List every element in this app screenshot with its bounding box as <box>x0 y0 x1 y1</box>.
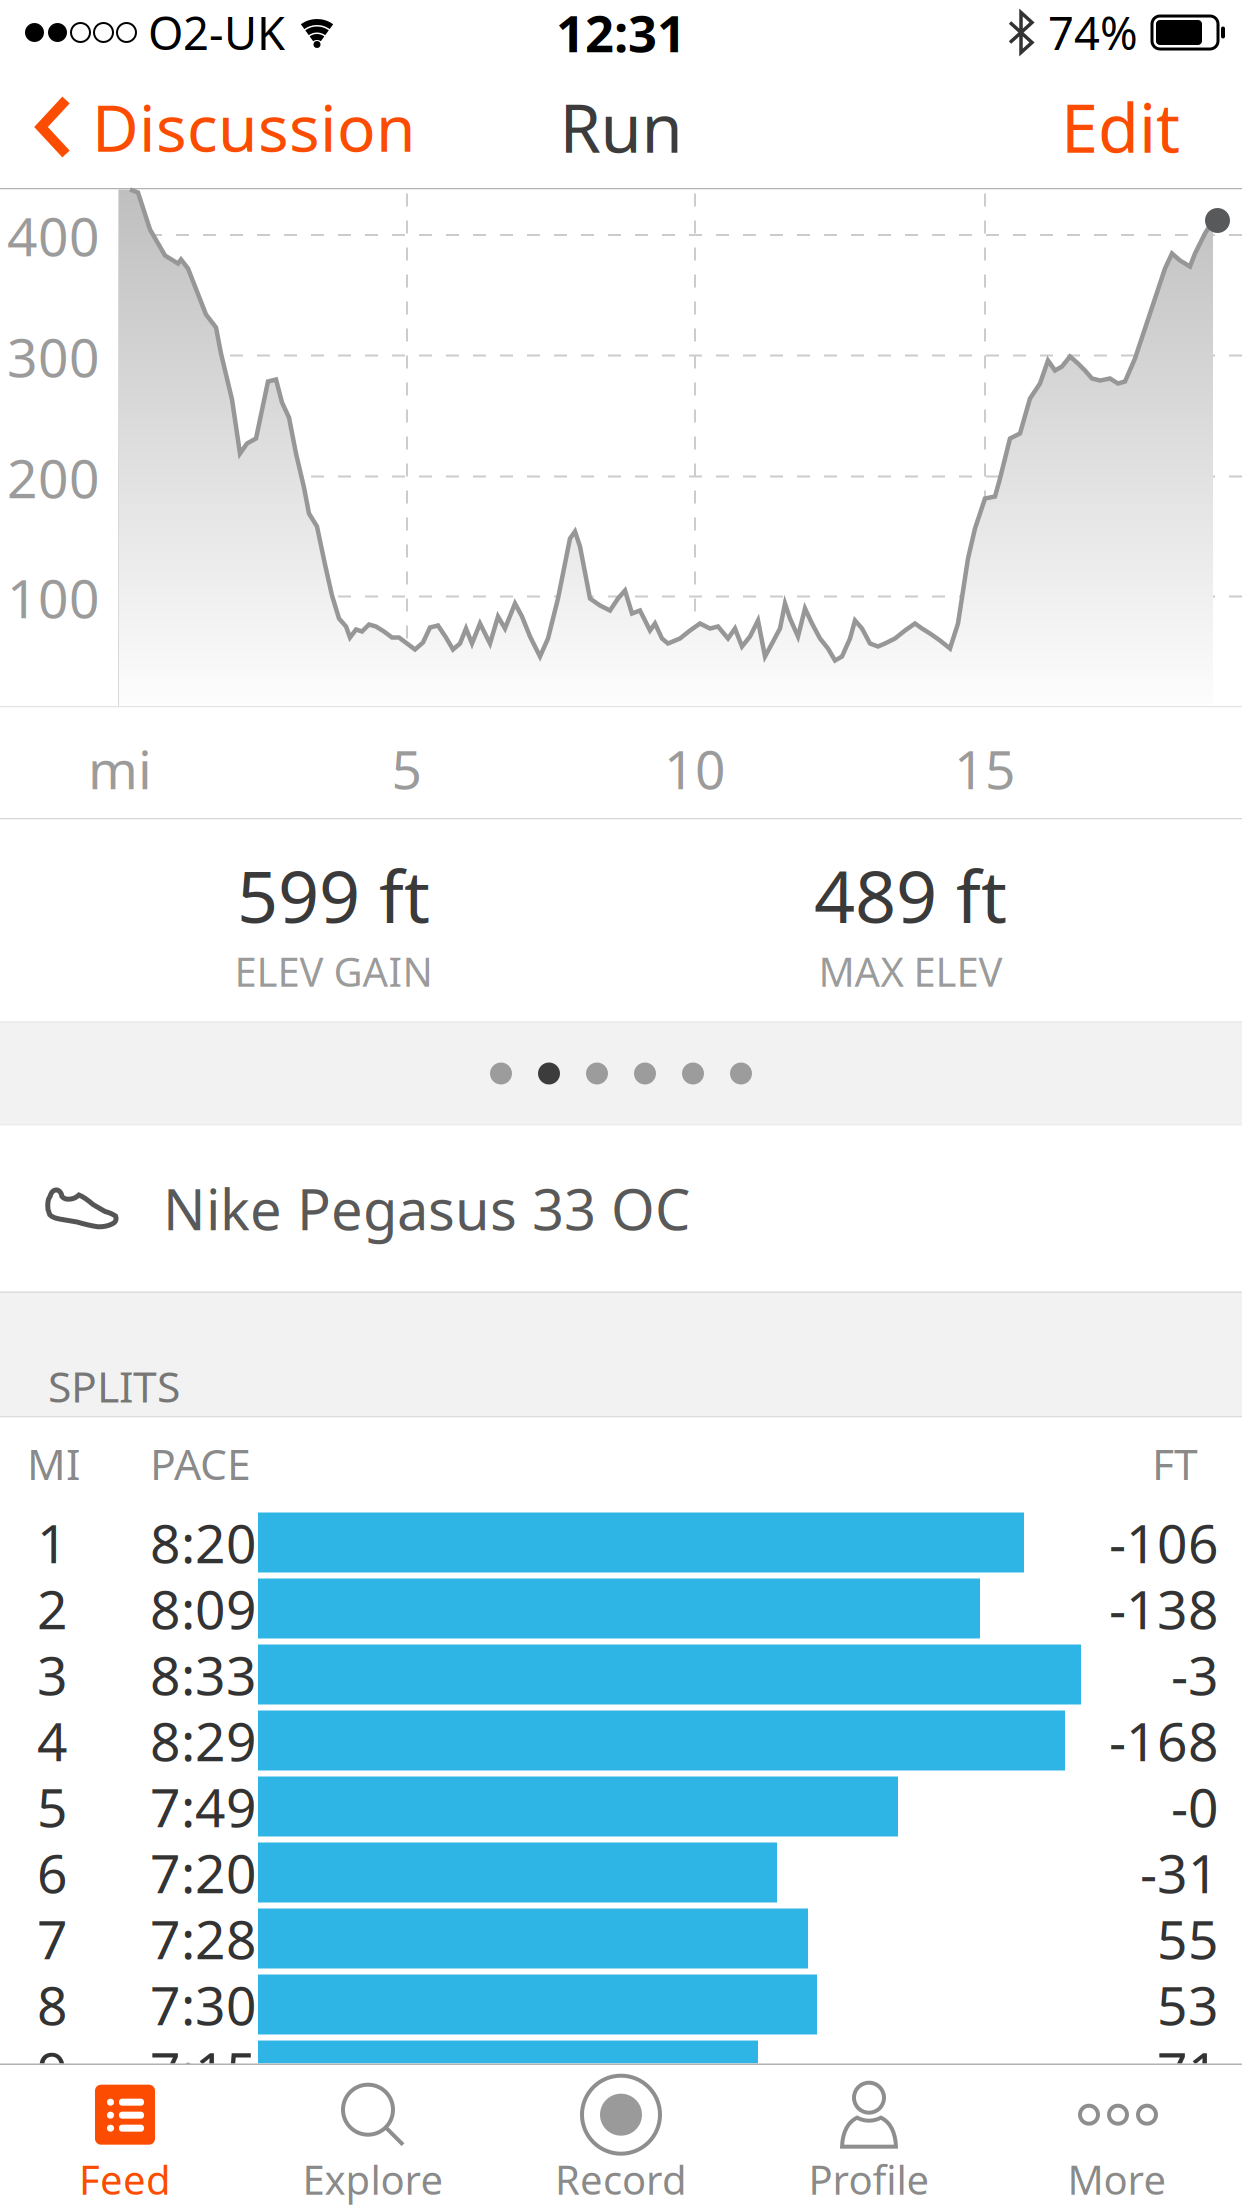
button[interactable]: Record <box>497 2065 745 2207</box>
staticText: 100 <box>7 562 100 633</box>
staticText: mi <box>88 733 152 804</box>
staticText: 5 <box>391 733 422 804</box>
staticText: Explore <box>302 2153 443 2206</box>
button[interactable]: Profile <box>745 2065 993 2207</box>
staticText: 200 <box>7 442 100 513</box>
staticText: 74% <box>1048 2 1138 63</box>
staticText: 599 ft <box>237 847 430 943</box>
staticText: 5 <box>37 1771 68 1842</box>
staticText: -138 <box>1109 1573 1219 1644</box>
staticText: 7:49 <box>150 1771 257 1842</box>
staticText: 6 <box>37 1837 68 1908</box>
staticText: More <box>1067 2153 1166 2206</box>
staticText: 400 <box>7 200 100 271</box>
staticText: 53 <box>1157 1969 1219 2040</box>
button[interactable]: Feed <box>1 2065 249 2207</box>
staticText: 1 <box>37 1507 68 1578</box>
staticText: -106 <box>1109 1507 1219 1578</box>
staticText: 4 <box>37 1705 68 1776</box>
staticText: 7 <box>37 1903 68 1974</box>
staticText: 15 <box>954 733 1016 804</box>
staticText: 489 ft <box>814 847 1007 943</box>
staticText: 12:31 <box>556 0 686 66</box>
staticText: MI <box>27 1435 80 1492</box>
staticText: Nike Pegasus 33 OC <box>163 1171 690 1246</box>
staticText: 8:33 <box>150 1639 257 1710</box>
staticText: Run <box>559 83 682 171</box>
staticText: Discussion <box>92 84 416 169</box>
staticText: -168 <box>1109 1705 1219 1776</box>
staticText: 7:20 <box>150 1837 257 1908</box>
staticText: MAX ELEV <box>818 945 1002 998</box>
staticText: 8:29 <box>150 1705 257 1776</box>
staticText: 10 <box>664 733 726 804</box>
staticText: 8 <box>37 1969 68 2040</box>
staticText: Profile <box>808 2153 929 2206</box>
button[interactable]: Nike Pegasus 33 OC <box>0 1125 1242 1291</box>
staticText: FT <box>1152 1435 1198 1492</box>
staticText: 300 <box>7 321 100 392</box>
button[interactable]: More <box>993 2065 1241 2207</box>
staticText: Feed <box>79 2153 171 2206</box>
staticText: 3 <box>37 1639 68 1710</box>
staticText: ELEV GAIN <box>234 945 432 998</box>
staticText: O2-UK <box>148 2 285 63</box>
staticText: 8:20 <box>150 1507 257 1578</box>
staticText: 7:15 <box>150 2035 257 2106</box>
staticText: 8:09 <box>150 1573 257 1644</box>
staticText: 9 <box>37 2035 68 2106</box>
staticText: Record <box>555 2153 687 2206</box>
staticText: -3 <box>1171 1639 1219 1710</box>
staticText: 7:30 <box>150 1969 257 2040</box>
staticText: 55 <box>1157 1903 1219 1974</box>
staticText: 7:28 <box>150 1903 257 1974</box>
button[interactable]: Discussion <box>36 84 416 169</box>
staticText: PACE <box>150 1435 251 1492</box>
staticText: 2 <box>37 1573 68 1644</box>
staticText: Edit <box>1061 83 1180 171</box>
staticText: SPLITS <box>48 1357 180 1414</box>
button[interactable]: Explore <box>249 2065 497 2207</box>
staticText: -71 <box>1140 2035 1219 2106</box>
staticText: -0 <box>1171 1771 1219 1842</box>
staticText: -31 <box>1140 1837 1219 1908</box>
button[interactable]: Edit <box>1061 83 1180 171</box>
